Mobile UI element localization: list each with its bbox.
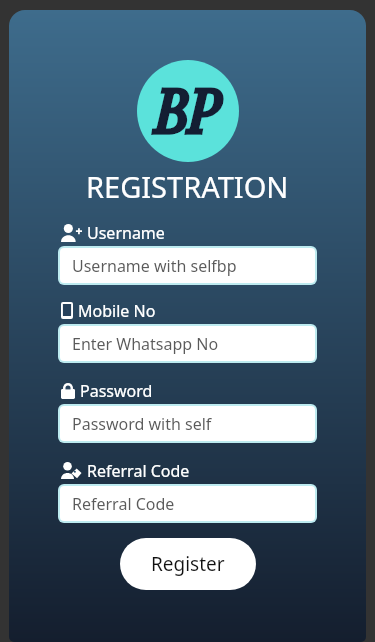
button[interactable]: Register xyxy=(120,538,256,590)
staticText: Username with selfbp xyxy=(72,255,237,277)
staticText: REGISTRATION xyxy=(86,167,289,206)
staticText: BP xyxy=(155,67,220,147)
staticText: Register xyxy=(151,551,225,577)
button[interactable]: Password with self xyxy=(60,406,315,441)
button[interactable]: Enter Whatsapp No xyxy=(60,326,315,361)
button[interactable]: Username with selfbp xyxy=(60,248,315,283)
staticText: Mobile No xyxy=(78,300,156,322)
staticText: Referral Code xyxy=(72,493,175,515)
staticText: BP xyxy=(155,67,220,147)
staticText: Password with self xyxy=(72,413,212,435)
staticText: Referral Code xyxy=(87,460,190,482)
button[interactable]: Referral Code xyxy=(60,486,315,521)
other: Mobile number xyxy=(61,302,73,319)
other: Username xyxy=(61,224,82,242)
staticText: Password xyxy=(80,380,153,402)
staticText: Username xyxy=(87,222,165,244)
other: Password xyxy=(61,383,75,399)
staticText: Enter Whatsapp No xyxy=(72,333,219,355)
other: Referral code xyxy=(61,462,82,479)
